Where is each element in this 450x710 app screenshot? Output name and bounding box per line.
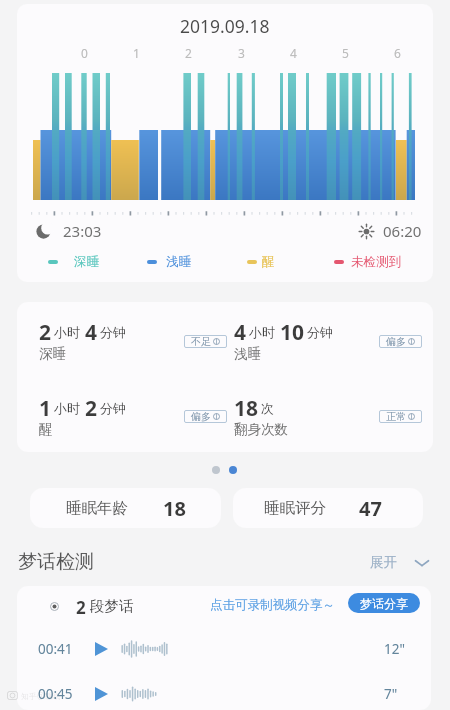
button[interactable]: 梦话分享 <box>348 593 420 613</box>
staticText: 分钟 <box>100 324 126 340</box>
staticText: 梦话检测 <box>18 550 94 574</box>
staticText: 2 <box>39 318 52 342</box>
button[interactable]: 不足 <box>184 335 227 348</box>
staticText: 00:41 <box>38 640 73 658</box>
staticText: 12" <box>384 640 405 658</box>
staticText: 梦话分享 <box>360 596 408 611</box>
staticText: 未检测到 <box>351 254 401 270</box>
staticText: 醒 <box>39 421 53 438</box>
button[interactable]: 睡眠评分 <box>233 488 423 528</box>
button[interactable]: 偏多 <box>184 410 227 423</box>
staticText: 1 <box>39 394 52 418</box>
button[interactable]: 展开 <box>370 550 430 575</box>
staticText: 小时 <box>54 400 80 416</box>
button[interactable]: 00:45 <box>17 673 431 710</box>
staticText: 2 <box>85 394 98 418</box>
staticText: 睡眠年龄 <box>66 498 128 518</box>
staticText: 点击可录制视频分享～ <box>210 597 335 613</box>
button[interactable]: 00:41 <box>17 628 431 670</box>
staticText: 4 <box>290 45 297 61</box>
staticText: 4 <box>234 318 247 342</box>
staticText: 次 <box>261 400 274 416</box>
staticText: 偏多 <box>191 410 211 423</box>
staticText: 47 <box>359 495 382 522</box>
staticText: 3 <box>238 45 245 61</box>
staticText: 2 <box>76 596 86 616</box>
staticText: 偏多 <box>386 335 406 348</box>
staticText: 睡眠评分 <box>264 498 326 518</box>
staticText: 1 <box>133 45 140 61</box>
staticText: 0 <box>81 45 88 61</box>
staticText: 分钟 <box>100 400 126 416</box>
staticText: 醒 <box>262 254 275 270</box>
staticText: 小时 <box>54 324 80 340</box>
staticText: 分钟 <box>307 324 333 340</box>
staticText: 4 <box>85 318 98 342</box>
staticText: 知乎@睡眠 <box>21 690 61 701</box>
staticText: 深睡 <box>39 345 66 362</box>
button[interactable]: 正常 <box>379 410 422 423</box>
staticText: 浅睡 <box>234 345 261 362</box>
staticText: 06:20 <box>383 221 422 241</box>
staticText: 10 <box>280 318 305 342</box>
staticText: 段梦话 <box>90 597 134 615</box>
staticText: 18 <box>234 394 259 418</box>
staticText: 不足 <box>191 335 211 348</box>
staticText: 深睡 <box>74 254 99 270</box>
staticText: 00:45 <box>38 685 73 703</box>
staticText: 18 <box>163 495 186 522</box>
staticText: 2 <box>185 45 192 61</box>
staticText: 7" <box>384 685 398 703</box>
button[interactable]: 睡眠年龄 <box>30 488 221 528</box>
staticText: 2019.09.18 <box>180 14 270 38</box>
staticText: 正常 <box>386 410 406 423</box>
staticText: 6 <box>394 45 401 61</box>
staticText: 展开 <box>370 554 397 571</box>
staticText: 5 <box>342 45 349 61</box>
button[interactable]: 偏多 <box>379 335 422 348</box>
staticText: 小时 <box>249 324 275 340</box>
staticText: 23:03 <box>63 221 102 241</box>
staticText: 翻身次数 <box>234 421 288 438</box>
staticText: 浅睡 <box>166 254 191 270</box>
